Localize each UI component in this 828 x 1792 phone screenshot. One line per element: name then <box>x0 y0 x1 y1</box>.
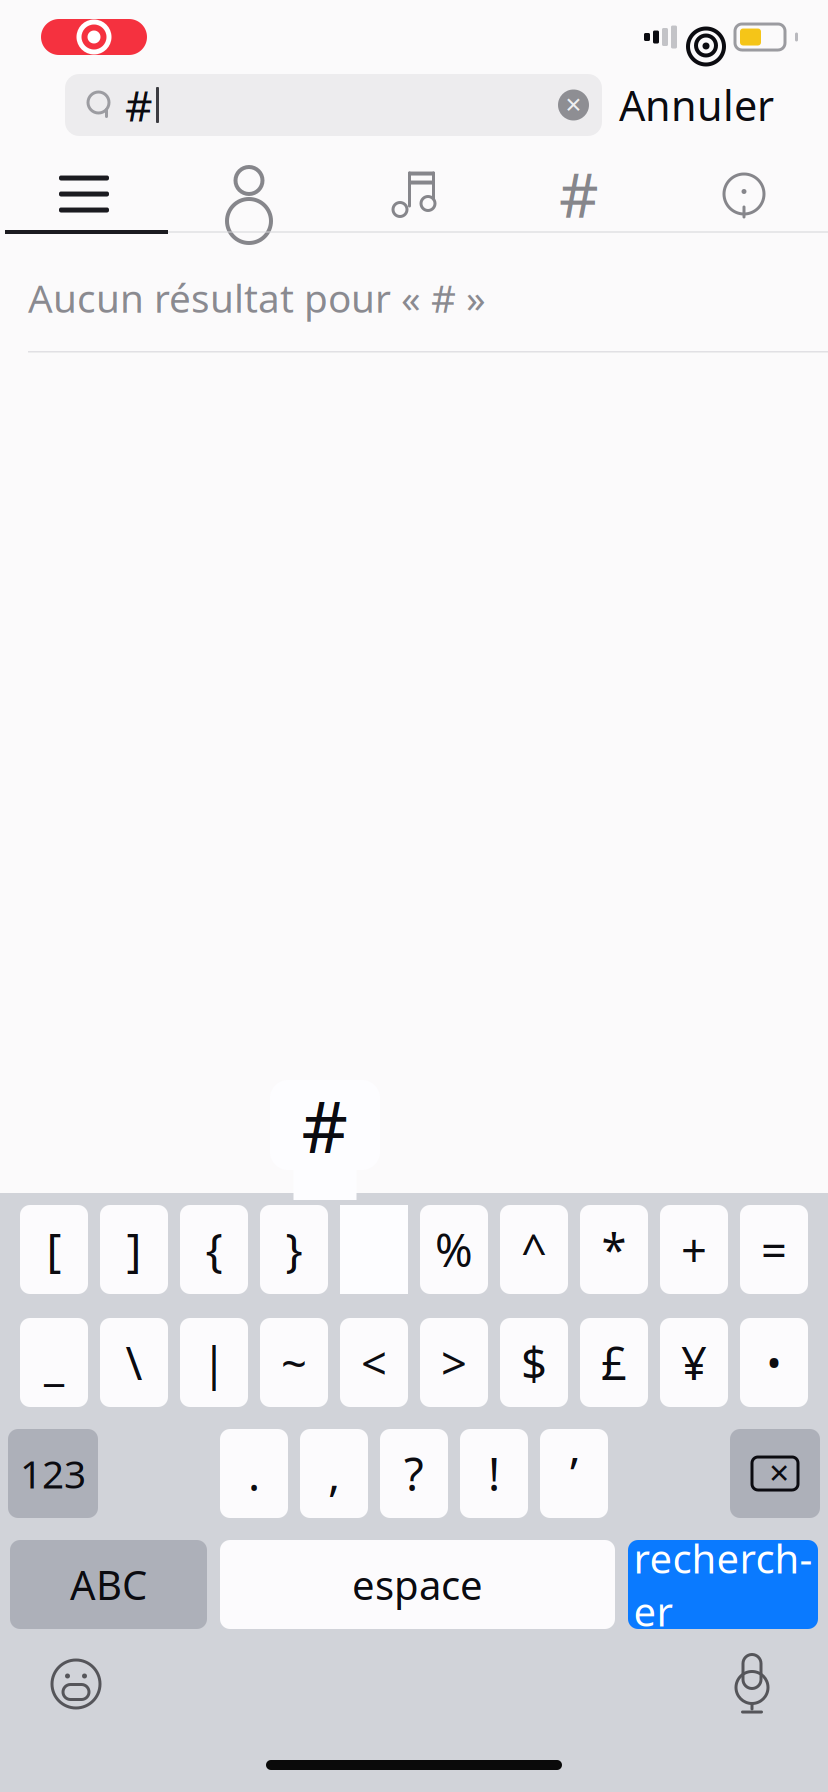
button[interactable]: % <box>420 1205 488 1294</box>
button[interactable]: + <box>660 1205 728 1294</box>
button[interactable]: ] <box>100 1205 168 1294</box>
button[interactable]: Delete <box>730 1429 820 1518</box>
staticText: % <box>435 1219 473 1280</box>
button[interactable]: ? <box>380 1429 448 1518</box>
staticText: espace <box>352 1558 483 1611</box>
button[interactable]: Recording indicator <box>41 19 147 55</box>
button[interactable]: List <box>1 158 166 230</box>
button[interactable]: Music <box>331 158 496 230</box>
button[interactable]: ~ <box>260 1318 328 1407</box>
staticText: < <box>361 1332 387 1393</box>
button[interactable]: ! <box>460 1429 528 1518</box>
staticText: # <box>559 153 599 235</box>
button[interactable]: } <box>260 1205 328 1294</box>
button[interactable]: ’ <box>540 1429 608 1518</box>
staticText: + <box>681 1219 707 1280</box>
staticText: Aucun résultat pour « # » <box>28 272 486 323</box>
staticText: ? <box>404 1443 424 1504</box>
staticText: | <box>201 1332 226 1393</box>
button[interactable]: Hashtags <box>496 158 661 230</box>
staticText: ^ <box>521 1219 547 1280</box>
button[interactable]: > <box>420 1318 488 1407</box>
staticText: ~ <box>281 1332 307 1393</box>
staticText: ABC <box>70 1558 147 1611</box>
button[interactable]: Dictation <box>704 1645 800 1723</box>
staticText: , <box>328 1443 340 1504</box>
staticText: ✕ <box>564 93 582 117</box>
staticText: \ <box>125 1332 142 1393</box>
button[interactable]: { <box>180 1205 248 1294</box>
button[interactable]: £ <box>580 1318 648 1407</box>
staticText: # <box>301 1077 348 1173</box>
button[interactable]: [ <box>20 1205 88 1294</box>
staticText: $ <box>521 1332 547 1393</box>
button[interactable]: * <box>580 1205 648 1294</box>
button[interactable]: < <box>340 1318 408 1407</box>
button[interactable]: = <box>740 1205 808 1294</box>
staticText: # <box>125 77 153 133</box>
staticText: ! <box>488 1443 500 1504</box>
button[interactable]: ^ <box>500 1205 568 1294</box>
staticText: rechercher <box>633 1531 812 1638</box>
staticText: ✕ <box>768 1458 790 1489</box>
staticText: Annuler <box>619 78 774 132</box>
button[interactable]: ABC <box>10 1540 207 1629</box>
button[interactable]: • <box>740 1318 808 1407</box>
staticText: _ <box>44 1332 64 1393</box>
button[interactable]: espace <box>220 1540 615 1629</box>
button[interactable]: , <box>300 1429 368 1518</box>
staticText: 123 <box>20 1448 86 1499</box>
staticText: > <box>441 1332 467 1393</box>
staticText: } <box>285 1219 302 1280</box>
button[interactable]: \ <box>100 1318 168 1407</box>
staticText: ’ <box>570 1443 578 1504</box>
staticText: * <box>601 1219 626 1280</box>
button[interactable]: rechercher <box>628 1540 818 1629</box>
button[interactable]: . <box>220 1429 288 1518</box>
staticText: . <box>248 1443 260 1504</box>
staticText: ¥ <box>681 1332 707 1393</box>
staticText: [ <box>46 1219 61 1280</box>
staticText: { <box>205 1219 222 1280</box>
staticText: ] <box>126 1219 141 1280</box>
button[interactable]: ¥ <box>660 1318 728 1407</box>
button[interactable]: People <box>166 158 331 230</box>
button[interactable]: Places <box>661 158 826 230</box>
staticText: • <box>766 1336 781 1389</box>
button[interactable]: _ <box>20 1318 88 1407</box>
button[interactable]: | <box>180 1318 248 1407</box>
button[interactable]: Search field <box>65 74 602 136</box>
button[interactable]: Emoji keyboard <box>28 1645 124 1723</box>
button[interactable]: 123 <box>8 1429 98 1518</box>
button[interactable]: $ <box>500 1318 568 1407</box>
staticText: = <box>761 1219 787 1280</box>
button[interactable]: Annuler <box>602 74 791 136</box>
staticText: £ <box>601 1332 627 1393</box>
